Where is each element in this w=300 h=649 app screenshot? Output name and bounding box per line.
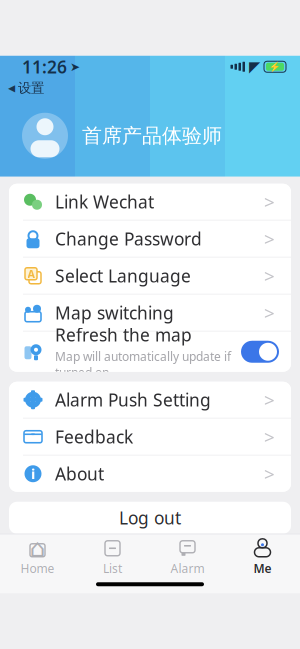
staticText: ➤ [70, 60, 80, 73]
staticText: > [264, 424, 275, 449]
button[interactable]: Feedback [9, 419, 291, 455]
button[interactable]: Alarm [150, 532, 225, 580]
staticText: Map will automatically update if turned … [55, 348, 231, 380]
button[interactable]: Log out [9, 502, 291, 534]
staticText: i [31, 464, 35, 483]
staticText: Select Language [55, 264, 191, 287]
staticText: Home [20, 560, 54, 576]
staticText: ⚡ [269, 61, 281, 72]
staticText: > [264, 300, 275, 325]
button[interactable]: List [75, 532, 150, 580]
staticText: List [103, 560, 122, 576]
staticText: > [264, 461, 275, 486]
button[interactable]: ◀ [0, 78, 44, 98]
staticText: 首席产品体验师 [82, 123, 222, 148]
staticText: > [264, 387, 275, 412]
staticText: A [27, 267, 34, 281]
staticText: Log out [119, 506, 181, 529]
staticText: Map switching [55, 301, 174, 324]
button[interactable]: Alarm Push Setting [9, 382, 291, 418]
staticText: ◀ [8, 83, 15, 93]
staticText: ◤ [249, 58, 260, 75]
staticText: Alarm Push Setting [55, 388, 211, 411]
staticText: > [264, 226, 275, 251]
staticText: Link Wechat [55, 190, 154, 213]
staticText: 11:26 [22, 55, 67, 78]
button[interactable]: A [9, 258, 291, 294]
staticText: Change Password [55, 227, 202, 250]
staticText: > [264, 263, 275, 288]
button[interactable]: Me [225, 532, 300, 580]
button[interactable]: Change Password [9, 221, 291, 257]
staticText: Alarm [170, 560, 204, 576]
button[interactable]: Link Wechat [9, 184, 291, 220]
staticText: Me [253, 560, 271, 576]
staticText: Feedback [55, 425, 133, 448]
button[interactable]: Map switching [9, 295, 291, 331]
button[interactable]: i [9, 456, 291, 492]
staticText: About [55, 462, 104, 485]
staticText: 设置 [18, 80, 44, 96]
button[interactable]: ⌂ [0, 532, 75, 580]
staticText: Refresh the map [55, 323, 192, 346]
button[interactable]: Refresh the map [9, 332, 291, 372]
staticText: ⌂ [29, 534, 45, 563]
staticText: > [264, 189, 275, 214]
